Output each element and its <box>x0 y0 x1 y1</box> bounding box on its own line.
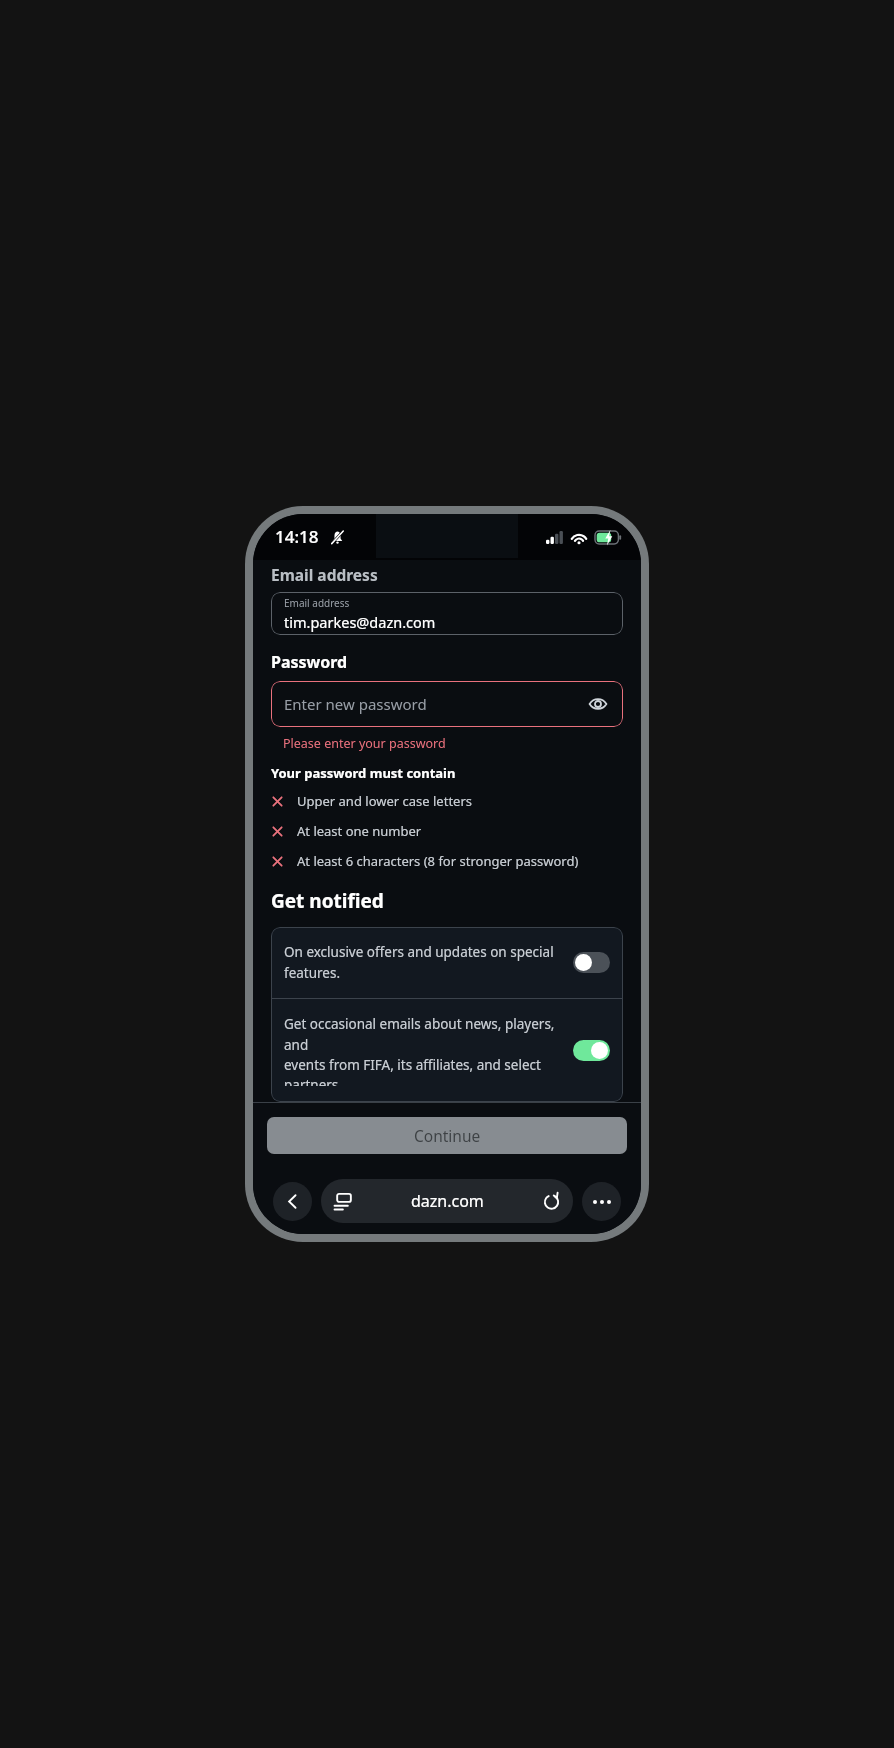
staticText: Get notified <box>271 888 384 914</box>
button[interactable]: Continue <box>267 1117 627 1154</box>
staticText: Your password must contain <box>271 764 456 782</box>
button[interactable]: Show password <box>586 692 610 716</box>
staticText: 14:18 <box>275 525 319 548</box>
staticText: Password <box>271 651 348 673</box>
button[interactable]: Back <box>273 1182 312 1221</box>
staticText: Continue <box>414 1125 481 1146</box>
staticText: At least 6 characters (8 for stronger pa… <box>297 852 579 870</box>
staticText: At least one number <box>297 822 422 840</box>
staticText: Enter new password <box>284 694 427 714</box>
button[interactable]: Get occasional emails about news, player… <box>271 999 623 1102</box>
button[interactable]: Toggle off <box>573 952 610 973</box>
button[interactable]: More options <box>582 1182 621 1221</box>
staticText: dazn.com <box>411 1190 484 1212</box>
staticText: Please enter your password <box>283 735 446 752</box>
staticText: Upper and lower case letters <box>297 792 473 810</box>
button[interactable]: Enter new password <box>271 681 623 727</box>
button[interactable]: On exclusive offers and updates on speci… <box>271 927 623 998</box>
button[interactable]: Toggle on <box>573 1040 610 1061</box>
staticText: On exclusive offers and updates on speci… <box>284 943 563 982</box>
button[interactable]: Email address <box>271 592 623 635</box>
staticText: Email address <box>271 564 378 585</box>
staticText: Get occasional emails about news, player… <box>284 1015 563 1086</box>
staticText: Email address <box>284 596 350 610</box>
button[interactable]: Reader view <box>321 1179 573 1223</box>
staticText: tim.parkes@dazn.com <box>284 612 436 632</box>
button[interactable]: Reload <box>542 1192 561 1211</box>
button[interactable]: Reader view <box>333 1192 352 1211</box>
